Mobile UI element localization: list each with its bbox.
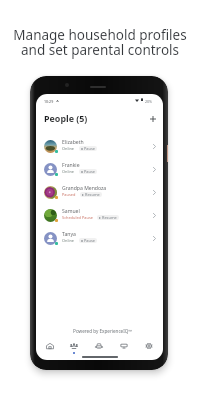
staticText: 20%: [145, 99, 153, 104]
staticText: Scheduled Pause: [62, 215, 93, 220]
staticText: Powered by ExperienceIQ™: [39, 328, 163, 334]
staticText: Manage household profiles and set parent…: [0, 26, 200, 59]
button[interactable]: Devices: [111, 340, 136, 353]
staticText: Resume: [102, 215, 117, 220]
staticText: Online: [62, 146, 75, 151]
staticText: Pause: [84, 238, 95, 243]
staticText: People (5): [44, 112, 88, 124]
staticText: Pause: [84, 146, 95, 151]
staticText: Paused: [62, 192, 76, 197]
button[interactable]: Connected cars: [86, 340, 111, 353]
button[interactable]: Frankie: [36, 158, 163, 181]
button[interactable]: Samuel: [36, 204, 163, 227]
button[interactable]: People: [62, 340, 86, 353]
staticText: Grandpa Mendoza: [62, 185, 107, 192]
button[interactable]: Elizabeth: [36, 135, 163, 158]
button[interactable]: Add person: [146, 112, 160, 126]
button[interactable]: Tanya: [36, 227, 163, 250]
button[interactable]: Resume: [80, 192, 102, 197]
staticText: Online: [62, 169, 75, 174]
staticText: Frankie: [62, 162, 80, 169]
button[interactable]: Pause: [79, 146, 97, 151]
button[interactable]: Settings: [136, 340, 161, 353]
button[interactable]: Home: [38, 340, 62, 353]
staticText: Samuel: [62, 208, 80, 215]
staticText: Elizabeth: [62, 139, 84, 146]
button[interactable]: Pause: [79, 238, 97, 243]
staticText: Online: [62, 238, 75, 243]
staticText: 10:29: [44, 99, 54, 104]
button[interactable]: Resume: [97, 215, 119, 220]
staticText: Resume: [85, 192, 100, 197]
staticText: Pause: [84, 169, 95, 174]
button[interactable]: Grandpa Mendoza: [36, 181, 163, 204]
staticText: Tanya: [62, 231, 76, 238]
button[interactable]: Pause: [79, 169, 97, 174]
